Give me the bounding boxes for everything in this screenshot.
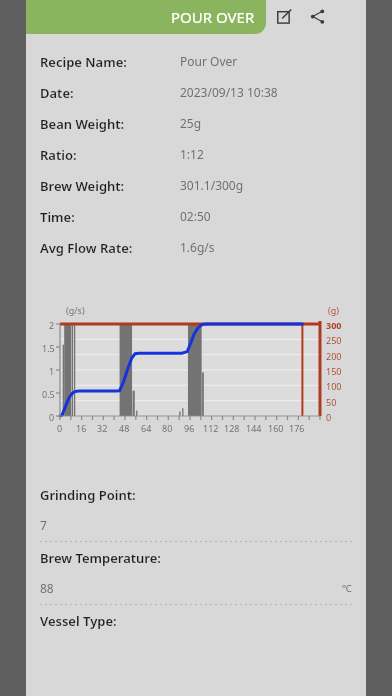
staticText: 1:12 (180, 146, 204, 162)
staticText: 0 (49, 411, 55, 423)
staticText: Brew Temperature: (40, 549, 161, 567)
staticText: 0 (326, 411, 332, 423)
staticText: 48 (119, 422, 130, 434)
staticText: Time: (40, 208, 75, 226)
button[interactable]: Date: (26, 84, 366, 115)
staticText: 0.5 (42, 388, 55, 400)
staticText: 160 (268, 422, 284, 434)
button[interactable]: Bean Weight: (26, 115, 366, 146)
staticText: 100 (326, 380, 342, 392)
button[interactable]: Time: (26, 208, 366, 239)
staticText: 1.5 (42, 342, 55, 354)
button[interactable]: Ratio: (26, 146, 366, 177)
staticText: 16 (76, 422, 87, 434)
staticText: (g/s) (66, 304, 85, 316)
button[interactable]: Share (303, 2, 331, 30)
staticText: 2023/09/13 10:38 (180, 84, 278, 100)
staticText: 0 (57, 422, 63, 434)
button[interactable]: Brew Temperature: (26, 543, 366, 606)
staticText: 301.1/300g (180, 177, 244, 193)
button[interactable]: Recipe Name: (26, 53, 366, 84)
staticText: 176 (289, 422, 305, 434)
staticText: ℃ (342, 581, 352, 595)
staticText: Ratio: (40, 146, 77, 164)
staticText: 200 (326, 350, 342, 362)
staticText: Brew Weight: (40, 177, 125, 195)
staticText: Grinding Point: (40, 486, 136, 504)
staticText: 96 (184, 422, 195, 434)
staticText: Vessel Type: (40, 612, 117, 630)
staticText: Avg Flow Rate: (40, 239, 133, 257)
staticText: 128 (224, 422, 240, 434)
staticText: 25g (180, 115, 202, 131)
staticText: 64 (141, 422, 152, 434)
button[interactable]: POUR OVER (26, 0, 266, 34)
staticText: 250 (326, 334, 342, 346)
button[interactable]: Avg Flow Rate: (26, 239, 366, 270)
staticText: 50 (326, 396, 337, 408)
staticText: 144 (246, 422, 262, 434)
staticText: 112 (203, 422, 219, 434)
button[interactable]: Edit (270, 2, 298, 30)
staticText: POUR OVER (171, 7, 255, 27)
staticText: 300 (326, 319, 342, 331)
staticText: 1 (49, 365, 55, 377)
staticText: 1.6g/s (180, 239, 215, 255)
button[interactable]: Brew Weight: (26, 177, 366, 208)
staticText: 7 (40, 517, 47, 533)
staticText: 32 (97, 422, 108, 434)
staticText: 80 (162, 422, 173, 434)
staticText: 150 (326, 365, 342, 377)
staticText: 88 (40, 580, 54, 596)
staticText: Recipe Name: (40, 53, 127, 71)
staticText: 02:50 (180, 208, 211, 224)
staticText: Bean Weight: (40, 115, 125, 133)
staticText: 2 (49, 319, 55, 331)
staticText: (g) (328, 304, 339, 316)
button[interactable]: Grinding Point: (26, 480, 366, 543)
staticText: Date: (40, 84, 74, 102)
staticText: Pour Over (180, 53, 238, 69)
